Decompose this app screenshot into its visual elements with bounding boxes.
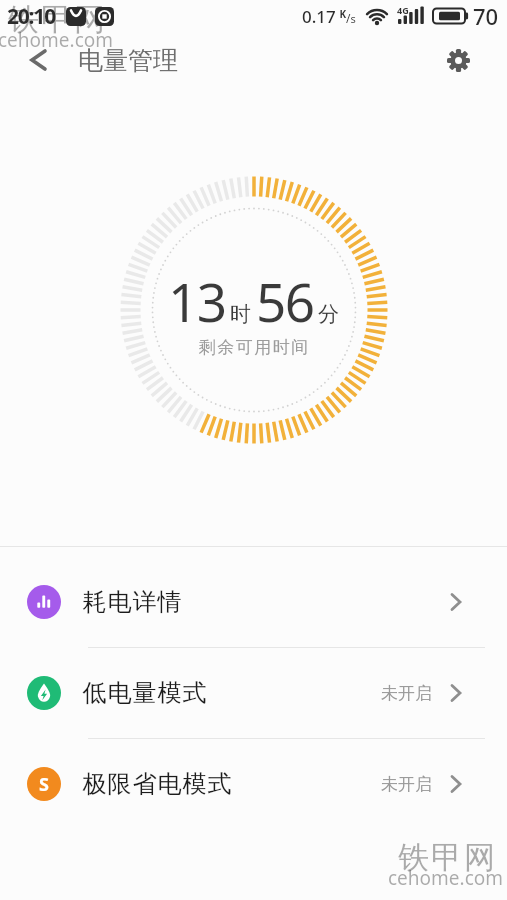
staticText: 剩余可用时间	[198, 337, 309, 358]
staticText: cehome.com	[0, 27, 114, 53]
button[interactable]	[436, 36, 480, 84]
staticText: 低电量模式	[82, 678, 207, 708]
staticText: S	[39, 772, 49, 797]
staticText: 未开启	[381, 683, 432, 704]
button[interactable]: 耗电详情	[0, 557, 507, 647]
staticText: 未开启	[381, 774, 432, 795]
staticText: 电量管理	[78, 45, 178, 76]
staticText: 铁甲网	[7, 0, 106, 39]
staticText: 13	[168, 265, 226, 337]
button[interactable]: S	[0, 739, 507, 829]
staticText: 20:10	[7, 2, 55, 31]
staticText: 70	[473, 1, 499, 31]
staticText: 耗电详情	[82, 587, 182, 617]
staticText: 56	[256, 265, 314, 337]
staticText: cehome.com	[388, 865, 504, 891]
staticText: 分	[318, 301, 339, 327]
button[interactable]	[18, 36, 58, 84]
staticText: 极限省电模式	[82, 769, 232, 799]
staticText: 0.17 K/s	[302, 5, 356, 28]
button[interactable]: 低电量模式	[0, 648, 507, 738]
staticText: 4G	[397, 4, 409, 16]
staticText: 时	[230, 301, 251, 327]
staticText: 铁甲网	[397, 838, 496, 877]
